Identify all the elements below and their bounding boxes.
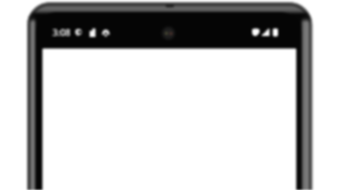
button[interactable]: Phone device mockup (0, 0, 340, 190)
